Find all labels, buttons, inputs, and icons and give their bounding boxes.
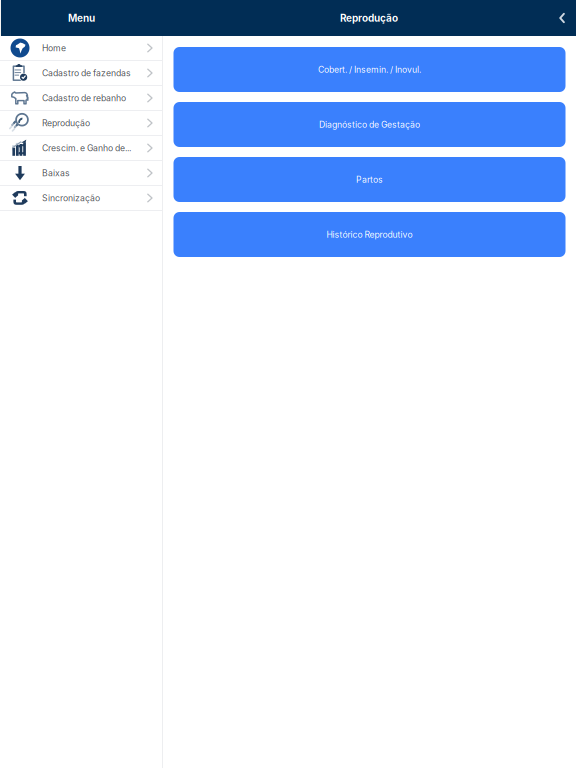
button[interactable]: Cobert. / Insemin. / Inovul. bbox=[173, 47, 565, 92]
button[interactable]: Reprodução bbox=[0, 111, 162, 136]
staticText: Diagnóstico de Gestação bbox=[319, 119, 420, 130]
staticText: Cadastro de rebanho bbox=[42, 93, 126, 103]
button[interactable]: Baixas bbox=[0, 161, 162, 186]
button[interactable]: Diagnóstico de Gestação bbox=[173, 102, 565, 147]
staticText: Cobert. / Insemin. / Inovul. bbox=[318, 64, 421, 75]
staticText: Menu bbox=[68, 12, 95, 24]
button[interactable]: Sincronização bbox=[0, 186, 162, 211]
staticText: Reprodução bbox=[42, 118, 90, 128]
staticText: Crescim. e Ganho de... bbox=[42, 143, 131, 153]
button[interactable]: Crescim. e Ganho de... bbox=[0, 136, 162, 161]
button[interactable]: Histórico Reprodutivo bbox=[173, 212, 565, 257]
staticText: Baixas bbox=[42, 168, 70, 178]
staticText: Partos bbox=[356, 174, 383, 185]
staticText: Histórico Reprodutivo bbox=[326, 229, 412, 240]
staticText: Cadastro de fazendas bbox=[42, 68, 131, 78]
button[interactable]: Back bbox=[552, 0, 572, 36]
button[interactable]: Menu bbox=[1, 0, 162, 36]
button[interactable]: Cadastro de fazendas bbox=[0, 61, 162, 86]
staticText: Home bbox=[42, 43, 66, 53]
button[interactable]: Cadastro de rebanho bbox=[0, 86, 162, 111]
staticText: Reprodução bbox=[340, 12, 398, 24]
staticText: Sincronização bbox=[42, 193, 100, 203]
button[interactable]: Home bbox=[0, 36, 162, 61]
button[interactable]: Partos bbox=[173, 157, 565, 202]
